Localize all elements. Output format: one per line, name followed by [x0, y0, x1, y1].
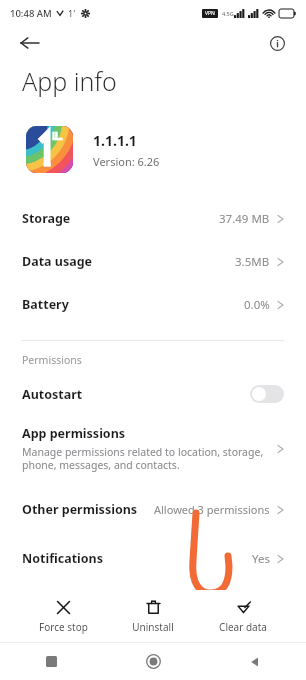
button[interactable]: Home — [102, 643, 204, 680]
staticText: App permissions — [22, 425, 126, 442]
button[interactable]: Storage — [0, 197, 306, 240]
staticText: Yes — [252, 551, 270, 567]
staticText: 1.1.1.1 — [93, 131, 137, 150]
staticText: 0.0% — [244, 297, 270, 313]
staticText: Manage permissions related to location, … — [22, 445, 264, 472]
staticText: Force stop — [39, 620, 88, 634]
button[interactable]: Clear data — [209, 596, 277, 637]
staticText: Permissions — [22, 353, 82, 367]
staticText: Autostart — [22, 386, 83, 403]
staticText: Other permissions — [22, 501, 138, 518]
button[interactable]: Recent apps — [0, 643, 102, 680]
button[interactable]: App permissions — [0, 419, 306, 478]
button[interactable]: Notifications — [0, 537, 306, 580]
button[interactable]: Battery — [0, 283, 306, 326]
staticText: Battery — [22, 296, 69, 313]
staticText: Storage — [22, 210, 71, 227]
staticText: 37.49 MB — [219, 211, 270, 227]
button[interactable]: Force stop — [29, 596, 97, 637]
button[interactable]: Back — [14, 27, 46, 59]
button[interactable]: About — [262, 28, 292, 58]
button[interactable]: Autostart — [0, 377, 306, 411]
button[interactable]: Back — [204, 643, 306, 680]
staticText: 1' — [68, 7, 76, 19]
staticText: 3.5MB — [235, 254, 270, 270]
staticText: Uninstall — [132, 620, 174, 634]
staticText: App info — [22, 64, 117, 98]
button[interactable]: Uninstall — [119, 596, 187, 637]
staticText: Version: 6.26 — [93, 154, 160, 169]
staticText: VPN — [205, 10, 215, 17]
button[interactable]: Data usage — [0, 240, 306, 283]
staticText: Data usage — [22, 253, 93, 270]
staticText: Allowed 3 permissions — [154, 502, 270, 517]
staticText: 10:48 AM — [10, 7, 52, 20]
staticText: Clear data — [219, 620, 267, 634]
staticText: Notifications — [22, 550, 104, 567]
button[interactable]: Other permissions — [0, 488, 306, 531]
staticText: 4.5G — [222, 10, 234, 17]
